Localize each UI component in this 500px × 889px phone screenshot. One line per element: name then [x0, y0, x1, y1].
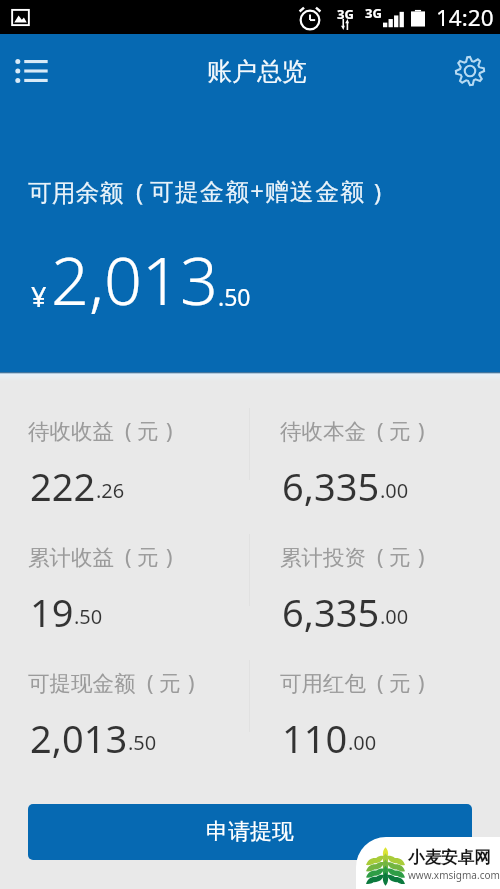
- staticText: 元: [137, 418, 159, 445]
- staticText: 累计投资: [280, 544, 366, 571]
- staticText: 110: [282, 712, 348, 759]
- staticText: 2,013: [30, 712, 128, 759]
- staticText: .50: [74, 603, 103, 630]
- staticText: 元: [137, 544, 159, 571]
- staticText: 6,335: [282, 586, 380, 633]
- staticText: 可提金额+赠送金额: [150, 175, 366, 208]
- staticText: (: [125, 416, 132, 445]
- staticText: 待收本金: [280, 418, 366, 445]
- staticText: 待收收益: [28, 418, 114, 445]
- staticText: 元: [389, 418, 411, 445]
- staticText: .00: [348, 729, 377, 756]
- staticText: ): [166, 542, 173, 571]
- staticText: 元: [389, 544, 411, 571]
- staticText: (: [147, 668, 154, 697]
- staticText: www.xmsigma.com: [408, 868, 500, 882]
- staticText: 可用红包: [280, 670, 366, 697]
- staticText: 可提现金额: [28, 670, 136, 697]
- staticText: (: [377, 416, 384, 445]
- staticText: .50: [128, 729, 157, 756]
- button[interactable]: 待收收益: [0, 381, 249, 507]
- staticText: ): [188, 668, 195, 697]
- button[interactable]: 累计投资: [250, 507, 500, 633]
- staticText: .00: [380, 603, 409, 630]
- button[interactable]: Settings: [447, 48, 493, 94]
- staticText: 3G: [337, 5, 354, 23]
- staticText: 19: [30, 586, 74, 633]
- staticText: ): [418, 542, 425, 571]
- staticText: .50: [218, 281, 251, 312]
- staticText: 元: [159, 670, 181, 697]
- button[interactable]: 申请提现: [28, 804, 472, 860]
- button[interactable]: 待收本金: [250, 381, 500, 507]
- staticText: (: [377, 668, 384, 697]
- staticText: 可用余额: [28, 178, 124, 208]
- button[interactable]: 累计收益: [0, 507, 249, 633]
- staticText: 申请提现: [206, 818, 294, 846]
- staticText: 元: [389, 670, 411, 697]
- staticText: 6,335: [282, 460, 380, 507]
- staticText: .00: [380, 477, 409, 504]
- staticText: 账户总览: [207, 56, 307, 87]
- staticText: .26: [96, 477, 125, 504]
- button[interactable]: 可提现金额: [0, 633, 249, 759]
- staticText: 3G: [365, 4, 382, 22]
- staticText: ): [374, 176, 382, 208]
- staticText: ): [418, 416, 425, 445]
- staticText: 222: [30, 460, 96, 507]
- staticText: 小麦安卓网: [408, 847, 491, 868]
- staticText: (: [125, 542, 132, 571]
- staticText: 2,013: [51, 234, 218, 325]
- staticText: 累计收益: [28, 544, 114, 571]
- staticText: 14:20: [436, 2, 494, 33]
- staticText: (: [377, 542, 384, 571]
- button[interactable]: Menu: [2, 42, 60, 100]
- button[interactable]: 可用红包: [250, 633, 500, 759]
- staticText: ): [166, 416, 173, 445]
- staticText: ): [418, 668, 425, 697]
- staticText: ¥: [31, 278, 47, 315]
- staticText: (: [136, 176, 144, 208]
